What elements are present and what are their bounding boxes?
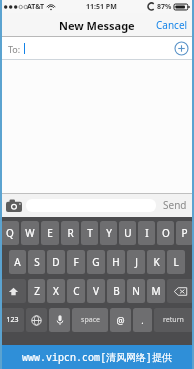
button[interactable]: I xyxy=(138,221,155,245)
staticText: F xyxy=(73,255,79,269)
button[interactable]: K xyxy=(147,250,165,274)
staticText: P xyxy=(181,226,188,240)
button[interactable]: Send xyxy=(161,195,189,215)
button[interactable]: L xyxy=(167,250,185,274)
button[interactable]: V xyxy=(87,279,105,303)
button[interactable]: U xyxy=(119,221,136,245)
staticText: B xyxy=(113,284,120,298)
button[interactable]: W xyxy=(21,221,39,245)
staticText: Y xyxy=(106,226,112,240)
button[interactable]: A xyxy=(9,250,26,274)
button[interactable]: T xyxy=(81,221,98,245)
button[interactable]: D xyxy=(47,250,65,274)
button[interactable]: Backspace xyxy=(167,279,193,303)
staticText: G xyxy=(92,255,100,269)
staticText: Z xyxy=(34,284,40,298)
button[interactable]: F xyxy=(67,250,85,274)
staticText: www.vipcn.com[清风网络]提供 xyxy=(22,350,172,364)
staticText: A xyxy=(14,255,21,269)
staticText: 123 xyxy=(6,315,19,325)
button[interactable]: P xyxy=(176,221,193,245)
staticText: S xyxy=(34,255,40,269)
button[interactable]: space xyxy=(72,308,108,332)
staticText: New Message xyxy=(59,18,135,33)
staticText: M xyxy=(151,284,161,298)
staticText: K xyxy=(153,255,160,269)
staticText: U xyxy=(124,226,132,240)
staticText: @ xyxy=(116,314,125,326)
button[interactable]: Voice input xyxy=(49,308,70,332)
button[interactable]: B xyxy=(107,279,125,303)
staticText: Cancel xyxy=(156,18,188,32)
button[interactable]: Shift xyxy=(1,279,26,303)
button[interactable]: H xyxy=(107,250,125,274)
button[interactable]: Cancel xyxy=(150,14,194,36)
staticText: 87% xyxy=(157,2,172,12)
button[interactable]: Change keyboard xyxy=(26,308,47,332)
button[interactable]: 123 xyxy=(1,308,24,332)
staticText: W xyxy=(25,226,35,240)
staticText: . xyxy=(141,314,144,326)
staticText: Q xyxy=(6,226,14,240)
button[interactable]: @ xyxy=(110,308,131,332)
staticText: O xyxy=(162,226,170,240)
button[interactable]: S xyxy=(28,250,45,274)
staticText: J xyxy=(135,255,138,269)
button[interactable]: Q xyxy=(1,221,19,245)
button[interactable]: E xyxy=(41,221,59,245)
staticText: T xyxy=(87,226,93,240)
button[interactable]: Z xyxy=(28,279,45,303)
button[interactable]: N xyxy=(127,279,145,303)
staticText: X xyxy=(53,284,59,298)
staticText: H xyxy=(112,255,120,269)
staticText: L xyxy=(173,255,179,269)
button[interactable]: Camera xyxy=(5,198,22,213)
button[interactable]: X xyxy=(47,279,65,303)
staticText: AT&T xyxy=(27,2,45,12)
button[interactable]: G xyxy=(87,250,105,274)
button[interactable]: . xyxy=(133,308,152,332)
staticText: C xyxy=(73,284,80,298)
staticText: Send xyxy=(163,198,187,212)
button[interactable]: Y xyxy=(100,221,117,245)
staticText: 11:51 PM xyxy=(86,2,117,12)
button[interactable]: J xyxy=(127,250,145,274)
button[interactable]: R xyxy=(61,221,79,245)
staticText: D xyxy=(52,255,60,269)
button[interactable]: return xyxy=(154,308,193,332)
staticText: return xyxy=(163,315,184,325)
staticText: I xyxy=(145,226,149,240)
staticText: N xyxy=(132,284,140,298)
staticText: V xyxy=(93,284,99,298)
staticText: To: xyxy=(8,43,21,55)
staticText: space xyxy=(81,315,100,325)
button[interactable]: Add contact xyxy=(174,41,189,56)
button[interactable]: M xyxy=(147,279,165,303)
button[interactable]: C xyxy=(67,279,85,303)
staticText: R xyxy=(67,226,74,240)
staticText: E xyxy=(47,226,53,240)
button[interactable]: O xyxy=(157,221,174,245)
